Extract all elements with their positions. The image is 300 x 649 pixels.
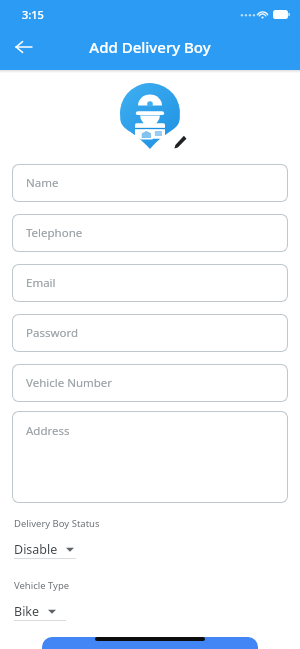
button[interactable]: Delivery boy photo	[120, 83, 180, 149]
staticText: Add Delivery Boy	[89, 37, 211, 57]
staticText: Password	[26, 325, 79, 341]
staticText: 3:15	[22, 7, 44, 22]
staticText: Vehicle Number	[26, 375, 113, 391]
button[interactable]	[42, 637, 258, 649]
button[interactable]: Bike	[14, 601, 74, 621]
button[interactable]: Email	[12, 264, 288, 302]
button[interactable]: Edit photo	[170, 132, 190, 152]
button[interactable]: Back	[8, 31, 40, 63]
staticText: Disable	[14, 541, 58, 558]
staticText: Telephone	[26, 225, 83, 241]
staticText: Vehicle Type	[14, 579, 70, 592]
button[interactable]: Address	[12, 411, 288, 503]
button[interactable]: Name	[12, 164, 288, 202]
button[interactable]: Password	[12, 314, 288, 352]
staticText: Email	[26, 275, 56, 291]
staticText: Bike	[14, 603, 40, 620]
staticText: Delivery Boy Status	[14, 517, 100, 530]
staticText: Address	[26, 423, 70, 439]
button[interactable]: Disable	[14, 539, 84, 559]
staticText: Name	[26, 175, 59, 191]
button[interactable]: Telephone	[12, 214, 288, 252]
button[interactable]: Vehicle Number	[12, 364, 288, 402]
